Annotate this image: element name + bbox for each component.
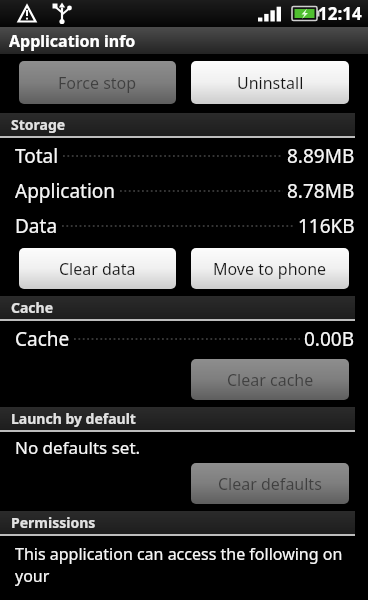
staticText: Application bbox=[15, 178, 116, 204]
button[interactable]: Application bbox=[0, 173, 368, 208]
staticText: Clear cache bbox=[227, 369, 314, 391]
staticText: Data bbox=[15, 213, 58, 239]
staticText: No defaults set. bbox=[15, 436, 141, 459]
staticText: Application info bbox=[9, 30, 136, 52]
staticText: 116KB bbox=[298, 213, 355, 239]
staticText: Total bbox=[15, 143, 59, 169]
staticText: Uninstall bbox=[237, 72, 304, 94]
staticText: Clear defaults bbox=[218, 473, 322, 495]
staticText: This application can access the followin… bbox=[15, 543, 368, 587]
button[interactable]: Move to phone bbox=[191, 248, 349, 289]
staticText: 8.89MB bbox=[287, 143, 355, 169]
button[interactable]: Cache bbox=[0, 321, 368, 356]
staticText: Storage bbox=[11, 115, 66, 134]
staticText: Cache bbox=[15, 326, 70, 352]
staticText: 12:14 bbox=[318, 2, 362, 25]
staticText: Cache bbox=[11, 298, 54, 317]
button[interactable]: Force stop bbox=[19, 61, 176, 104]
staticText: Permissions bbox=[11, 513, 96, 532]
button[interactable]: Clear cache bbox=[191, 359, 349, 400]
button[interactable]: Uninstall bbox=[191, 61, 349, 104]
staticText: 0.00B bbox=[304, 326, 355, 352]
button[interactable]: Clear data bbox=[19, 248, 176, 289]
button[interactable]: Total bbox=[0, 138, 368, 173]
staticText: Move to phone bbox=[213, 258, 327, 280]
staticText: Launch by default bbox=[11, 409, 136, 428]
button[interactable]: Data bbox=[0, 208, 368, 243]
button[interactable]: Clear defaults bbox=[191, 463, 349, 504]
staticText: Force stop bbox=[58, 72, 137, 94]
staticText: Clear data bbox=[59, 258, 136, 280]
staticText: 8.78MB bbox=[287, 178, 355, 204]
